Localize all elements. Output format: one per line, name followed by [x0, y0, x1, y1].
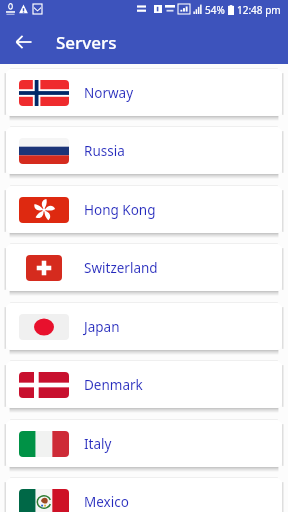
- button[interactable]: Switzerland: [6, 244, 282, 291]
- button[interactable]: Hong Kong: [6, 186, 282, 233]
- staticText: Japan: [84, 318, 120, 336]
- button[interactable]: Denmark: [6, 361, 282, 408]
- staticText: 12:48 pm: [237, 3, 281, 17]
- staticText: Russia: [84, 142, 125, 160]
- button[interactable]: Back: [8, 26, 40, 58]
- staticText: Mexico: [84, 493, 129, 511]
- staticText: Servers: [56, 31, 117, 54]
- staticText: Norway: [84, 84, 134, 102]
- button[interactable]: Italy: [6, 420, 282, 467]
- button[interactable]: Norway: [6, 69, 282, 116]
- staticText: 54%: [205, 3, 225, 17]
- staticText: Denmark: [84, 376, 143, 394]
- staticText: Switzerland: [84, 259, 158, 277]
- button[interactable]: Mexico: [6, 478, 282, 512]
- button[interactable]: Japan: [6, 303, 282, 350]
- staticText: Italy: [84, 435, 112, 453]
- staticText: Hong Kong: [84, 201, 156, 219]
- button[interactable]: Russia: [6, 127, 282, 174]
